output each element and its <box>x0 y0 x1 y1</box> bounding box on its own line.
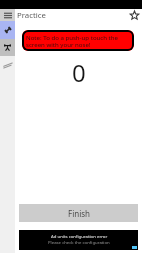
staticText: Note: To do a push-up touch the screen w… <box>26 33 119 49</box>
button[interactable]: Exercise type <box>0 39 15 56</box>
staticText: Finish <box>68 208 90 219</box>
staticText: Please check the configuration <box>48 239 110 245</box>
button[interactable]: Open navigation menu <box>0 9 15 21</box>
button[interactable]: Ad units configuration error <box>19 230 138 250</box>
button[interactable]: Exercise type <box>0 21 15 39</box>
button[interactable]: Finish <box>19 204 138 222</box>
staticText: 0 <box>72 56 86 89</box>
button[interactable]: Exercise type <box>0 56 15 73</box>
staticText: Ad units configuration error <box>51 233 108 239</box>
button[interactable]: Favorite <box>127 9 141 21</box>
staticText: Practice <box>17 10 46 21</box>
